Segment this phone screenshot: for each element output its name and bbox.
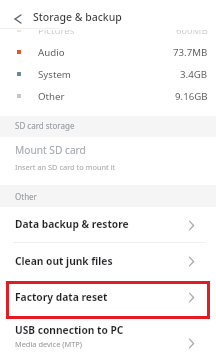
staticText: Insert an SD card to mount it (15, 162, 116, 172)
button[interactable]: Mount SD card (0, 136, 216, 185)
staticText: Pictures (38, 24, 75, 37)
button[interactable]: Pictures (0, 19, 216, 41)
staticText: Mount SD card (15, 143, 86, 157)
staticText: Media device (MTP) (15, 339, 82, 349)
staticText: Factory data reset (15, 290, 108, 304)
staticText: SD card storage (15, 120, 75, 131)
button[interactable]: Factory data reset (0, 279, 216, 314)
staticText: 9.16GB (175, 90, 208, 103)
staticText: Data backup & restore (15, 217, 129, 231)
staticText: System (38, 68, 71, 81)
staticText: USB connection to PC (15, 323, 124, 337)
button[interactable]: System (0, 63, 216, 85)
staticText: 600MB (176, 24, 208, 37)
staticText: Clean out junk files (15, 254, 113, 268)
button[interactable]: Data backup & restore (0, 206, 216, 242)
staticText: 73.7MB (173, 46, 208, 59)
button[interactable]: Back (6, 7, 30, 31)
button[interactable]: USB connection to PC (0, 318, 216, 357)
staticText: Other (38, 90, 65, 103)
staticText: Other (15, 191, 37, 202)
staticText: Audio (38, 46, 65, 59)
button[interactable]: Other (0, 85, 216, 107)
staticText: 3.4GB (180, 68, 208, 81)
button[interactable]: Clean out junk files (0, 243, 216, 278)
staticText: Storage & backup (33, 10, 122, 24)
button[interactable]: Audio (0, 41, 216, 63)
